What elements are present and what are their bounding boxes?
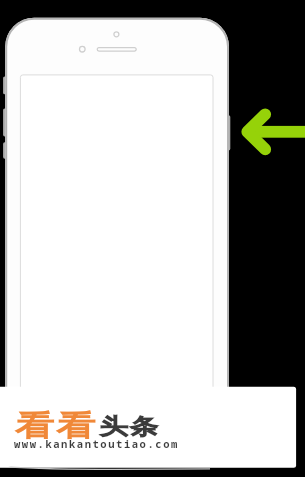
button[interactable]: Volume up [0, 107, 10, 138]
staticText: 看看 [15, 408, 98, 445]
button[interactable]: 看看 [0, 387, 296, 468]
button[interactable]: Power button [222, 115, 234, 150]
button[interactable]: Ring/Silent switch [0, 74, 10, 96]
staticText: www.kankantoutiao.com [14, 437, 179, 451]
button[interactable]: Volume down [0, 141, 10, 160]
staticText: 头条 [99, 413, 159, 441]
